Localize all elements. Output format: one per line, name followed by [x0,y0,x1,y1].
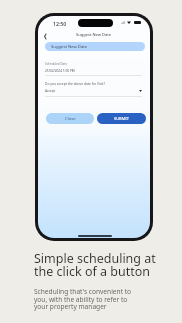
staticText: 12:50 [53,20,67,27]
button[interactable]: Close [46,113,94,124]
button[interactable]: SUBMIT [97,113,146,124]
staticText: Close [65,116,76,122]
button[interactable]: Back [40,31,50,41]
staticText: Accept [45,89,56,93]
staticText: Scheduled Date [45,62,68,66]
button[interactable]: Suggest New Date [45,42,145,51]
staticText: 25/02/2024 1:00 PM [45,69,75,73]
staticText: Scheduling that's convenient to you, wit… [34,287,133,311]
staticText: Do you accept the above date for Visit? [45,81,105,85]
staticText: Simple scheduling at the click of a butt… [34,250,158,279]
staticText: SUBMIT [114,116,129,121]
button[interactable]: Accept [45,89,142,93]
staticText: Suggest New Date [76,32,112,37]
staticText: Suggest New Date [51,44,88,50]
